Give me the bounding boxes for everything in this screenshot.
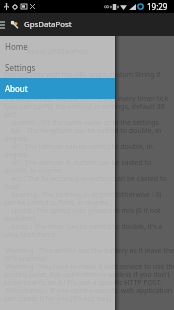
button[interactable]: Open navigation drawer bbox=[0, 13, 7, 36]
staticText: GpsDataPost bbox=[24, 19, 72, 30]
button[interactable]: Close navigation drawer bbox=[115, 36, 174, 310]
button[interactable]: About bbox=[0, 78, 115, 99]
button[interactable]: Home bbox=[0, 36, 115, 57]
staticText: Home bbox=[5, 41, 28, 52]
staticText: About bbox=[5, 83, 28, 94]
staticText: Settings bbox=[5, 62, 36, 73]
button[interactable]: Settings bbox=[0, 57, 115, 78]
staticText: 19:29 bbox=[147, 1, 168, 12]
staticText: Edit settings with the URL and a custom … bbox=[4, 70, 174, 303]
